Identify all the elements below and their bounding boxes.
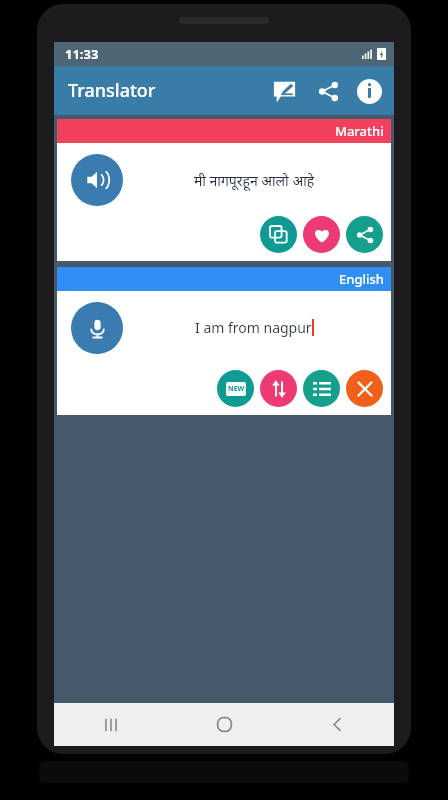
button[interactable]: Copy: [260, 216, 297, 253]
button[interactable]: Home: [168, 703, 281, 746]
staticText: English: [339, 270, 384, 288]
staticText: I am from nagpur: [195, 318, 312, 337]
staticText: NEW: [228, 384, 245, 394]
button[interactable]: Favourite: [303, 216, 340, 253]
button[interactable]: Voice input: [71, 302, 123, 354]
button[interactable]: Back: [281, 703, 394, 746]
button[interactable]: Info: [350, 69, 388, 113]
button[interactable]: Recents: [54, 703, 168, 746]
button[interactable]: Share: [306, 69, 350, 113]
staticText: 11:33: [65, 45, 99, 63]
button[interactable]: Swap languages: [260, 370, 297, 407]
button[interactable]: Share: [346, 216, 383, 253]
button[interactable]: Clear: [346, 370, 383, 407]
button[interactable]: History: [303, 370, 340, 407]
staticText: Marathi: [335, 122, 384, 140]
button[interactable]: New: [217, 370, 254, 407]
staticText: मी नागपूरहून आलो आहे: [131, 171, 377, 190]
button[interactable]: Speak: [71, 154, 123, 206]
button[interactable]: Feedback: [262, 69, 306, 113]
staticText: Translator: [68, 78, 156, 103]
